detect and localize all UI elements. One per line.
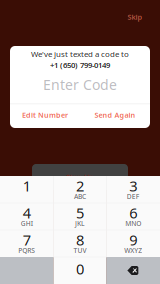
staticText: 5 xyxy=(76,203,84,223)
button[interactable]: 3 xyxy=(107,176,160,203)
staticText: GHI xyxy=(21,219,33,228)
staticText: 0 xyxy=(76,259,84,279)
staticText: PQRS xyxy=(18,246,35,255)
button[interactable]: 9 xyxy=(107,230,160,257)
staticText: 4 xyxy=(23,203,31,223)
button[interactable]: Send Again xyxy=(80,103,150,127)
button[interactable]: Edit Number xyxy=(10,103,80,127)
staticText: 7 xyxy=(23,230,31,250)
button[interactable]: 0 xyxy=(53,257,107,284)
button[interactable]: 8 xyxy=(53,230,107,257)
staticText: 1 xyxy=(23,176,31,196)
staticText: 9 xyxy=(129,230,137,250)
staticText: We've just texted a code to xyxy=(31,49,129,59)
staticText: TUV xyxy=(73,246,86,255)
button[interactable]: 2 xyxy=(53,176,107,203)
staticText: DEF xyxy=(127,192,140,201)
staticText: Edit Number xyxy=(22,110,68,120)
staticText: 8 xyxy=(76,230,84,250)
staticText: Skip xyxy=(127,12,142,22)
staticText: JKL xyxy=(75,219,85,228)
staticText: Enter Code xyxy=(43,75,117,94)
button[interactable]: 6 xyxy=(107,203,160,230)
staticText: 6 xyxy=(129,203,137,223)
staticText: WXYZ xyxy=(124,246,142,255)
staticText: Send Again xyxy=(94,110,135,120)
staticText: +1 (650) 799-0149 xyxy=(50,60,110,70)
button[interactable]: 5 xyxy=(53,203,107,230)
button[interactable]: Delete xyxy=(107,257,160,284)
button[interactable]: 4 xyxy=(0,203,53,230)
staticText: MNO xyxy=(125,219,141,228)
button[interactable]: Skip xyxy=(119,9,151,25)
button[interactable]: 7 xyxy=(0,230,53,257)
button[interactable]: 1 xyxy=(0,176,53,203)
button[interactable]: Sign Up xyxy=(32,164,128,190)
staticText: 2 xyxy=(76,176,84,196)
staticText: Sign Up xyxy=(66,172,94,182)
staticText: 3 xyxy=(129,176,137,196)
staticText: ABC xyxy=(74,192,86,201)
